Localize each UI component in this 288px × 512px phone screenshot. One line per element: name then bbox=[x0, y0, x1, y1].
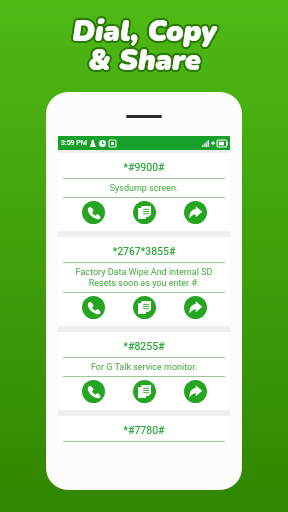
staticText: *#8255# bbox=[63, 340, 225, 352]
staticText: Dial, Copy bbox=[72, 14, 217, 53]
staticText: Dial, Copy bbox=[72, 13, 217, 52]
staticText: Dial, Copy bbox=[74, 11, 219, 50]
button[interactable]: Copy bbox=[133, 201, 156, 224]
button[interactable]: *2767*3855# bbox=[58, 237, 230, 326]
staticText: Dial, Copy bbox=[70, 11, 215, 50]
staticText: Dial, Copy bbox=[72, 11, 217, 50]
staticText: Dial, Copy bbox=[71, 10, 216, 49]
staticText: & Share bbox=[86, 42, 199, 81]
staticText: Dial, Copy bbox=[74, 12, 219, 51]
staticText: & Share bbox=[90, 40, 203, 79]
button[interactable]: Copy bbox=[133, 296, 156, 319]
button[interactable]: Share bbox=[184, 380, 207, 403]
staticText: & Share bbox=[89, 42, 202, 81]
staticText: & Share bbox=[90, 41, 203, 80]
button[interactable]: *#7780# bbox=[58, 416, 230, 448]
staticText: & Share bbox=[87, 39, 200, 78]
staticText: 3:59 PM bbox=[61, 139, 87, 147]
button[interactable]: Copy bbox=[133, 380, 156, 403]
staticText: Dial, Copy bbox=[73, 10, 218, 49]
button[interactable]: Share bbox=[184, 201, 207, 224]
staticText: Factory Data Wipe And internal SD bbox=[63, 267, 225, 278]
staticText: & Share bbox=[90, 42, 203, 81]
staticText: & Share bbox=[88, 42, 201, 81]
staticText: *#9900# bbox=[63, 161, 225, 173]
staticText: Dial, Copy bbox=[74, 13, 219, 52]
staticText: Dial, Copy bbox=[71, 13, 216, 52]
staticText: & Share bbox=[89, 39, 202, 78]
button[interactable]: Call bbox=[82, 296, 105, 319]
staticText: & Share bbox=[87, 43, 200, 82]
staticText: Dial, Copy bbox=[73, 12, 218, 51]
staticText: Dial, Copy bbox=[70, 13, 215, 52]
staticText: Dial, Copy bbox=[73, 11, 218, 50]
staticText: & Share bbox=[88, 41, 201, 80]
staticText: & Share bbox=[87, 42, 200, 81]
staticText: Dial, Copy bbox=[71, 12, 216, 51]
staticText: Dial, Copy bbox=[73, 13, 218, 52]
staticText: & Share bbox=[89, 40, 202, 79]
button[interactable]: *#9900# bbox=[58, 153, 230, 231]
staticText: Dial, Copy bbox=[71, 14, 216, 53]
staticText: Dial, Copy bbox=[70, 12, 215, 51]
staticText: Dial, Copy bbox=[71, 11, 216, 50]
button[interactable]: *#8255# bbox=[58, 332, 230, 410]
staticText: & Share bbox=[89, 41, 202, 80]
staticText: & Share bbox=[88, 39, 201, 78]
staticText: & Share bbox=[86, 41, 199, 80]
staticText: For G Talk service monitor. bbox=[63, 362, 225, 373]
staticText: *2767*3855# bbox=[63, 245, 225, 257]
button[interactable]: Call bbox=[82, 380, 105, 403]
staticText: & Share bbox=[88, 40, 201, 79]
staticText: & Share bbox=[87, 40, 200, 79]
staticText: Dial, Copy bbox=[73, 14, 218, 53]
staticText: Dial, Copy bbox=[72, 12, 217, 51]
staticText: *#7780# bbox=[63, 424, 225, 436]
staticText: Resets soon as you enter #. bbox=[63, 278, 225, 289]
staticText: Dial, Copy bbox=[72, 12, 217, 51]
staticText: & Share bbox=[87, 41, 200, 80]
button[interactable]: Share bbox=[184, 296, 207, 319]
staticText: & Share bbox=[86, 40, 199, 79]
button[interactable]: Call bbox=[82, 201, 105, 224]
staticText: & Share bbox=[88, 41, 201, 80]
staticText: Dial, Copy bbox=[72, 10, 217, 49]
staticText: Sysdump screen. bbox=[63, 183, 225, 194]
staticText: & Share bbox=[89, 43, 202, 82]
staticText: & Share bbox=[88, 43, 201, 82]
